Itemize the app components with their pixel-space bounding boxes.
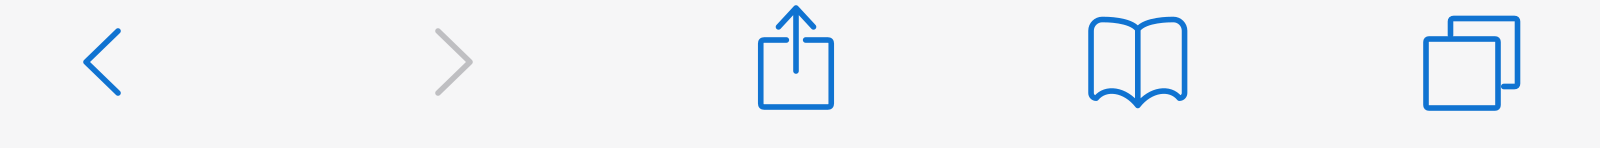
button[interactable]: Back [12, 0, 192, 148]
button[interactable]: Share [706, 0, 886, 148]
button[interactable]: Bookmarks [1048, 0, 1228, 148]
button[interactable]: Forward [364, 0, 544, 148]
button[interactable]: Tabs [1372, 0, 1552, 148]
